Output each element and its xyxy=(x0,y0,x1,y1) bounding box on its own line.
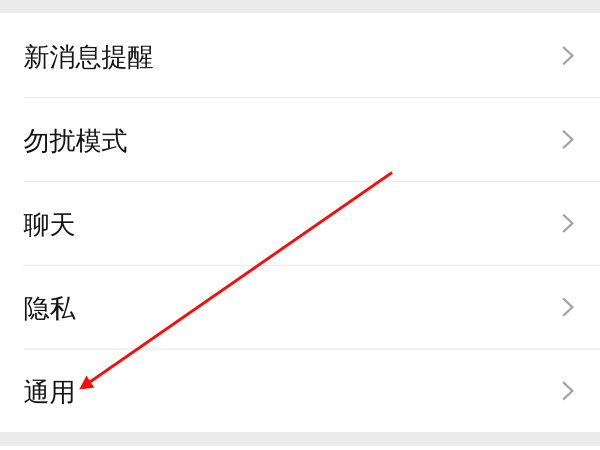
staticText: 通用 xyxy=(23,376,75,409)
staticText: 隐私 xyxy=(23,292,75,325)
staticText: 新消息提醒 xyxy=(23,41,153,74)
button[interactable]: 勿扰模式 xyxy=(0,97,600,181)
button[interactable]: 新消息提醒 xyxy=(0,13,600,97)
button[interactable]: 隐私 xyxy=(0,264,600,348)
button[interactable]: 通用 xyxy=(0,348,600,432)
button[interactable]: 聊天 xyxy=(0,181,600,264)
staticText: 勿扰模式 xyxy=(23,125,127,157)
staticText: 聊天 xyxy=(23,208,75,241)
